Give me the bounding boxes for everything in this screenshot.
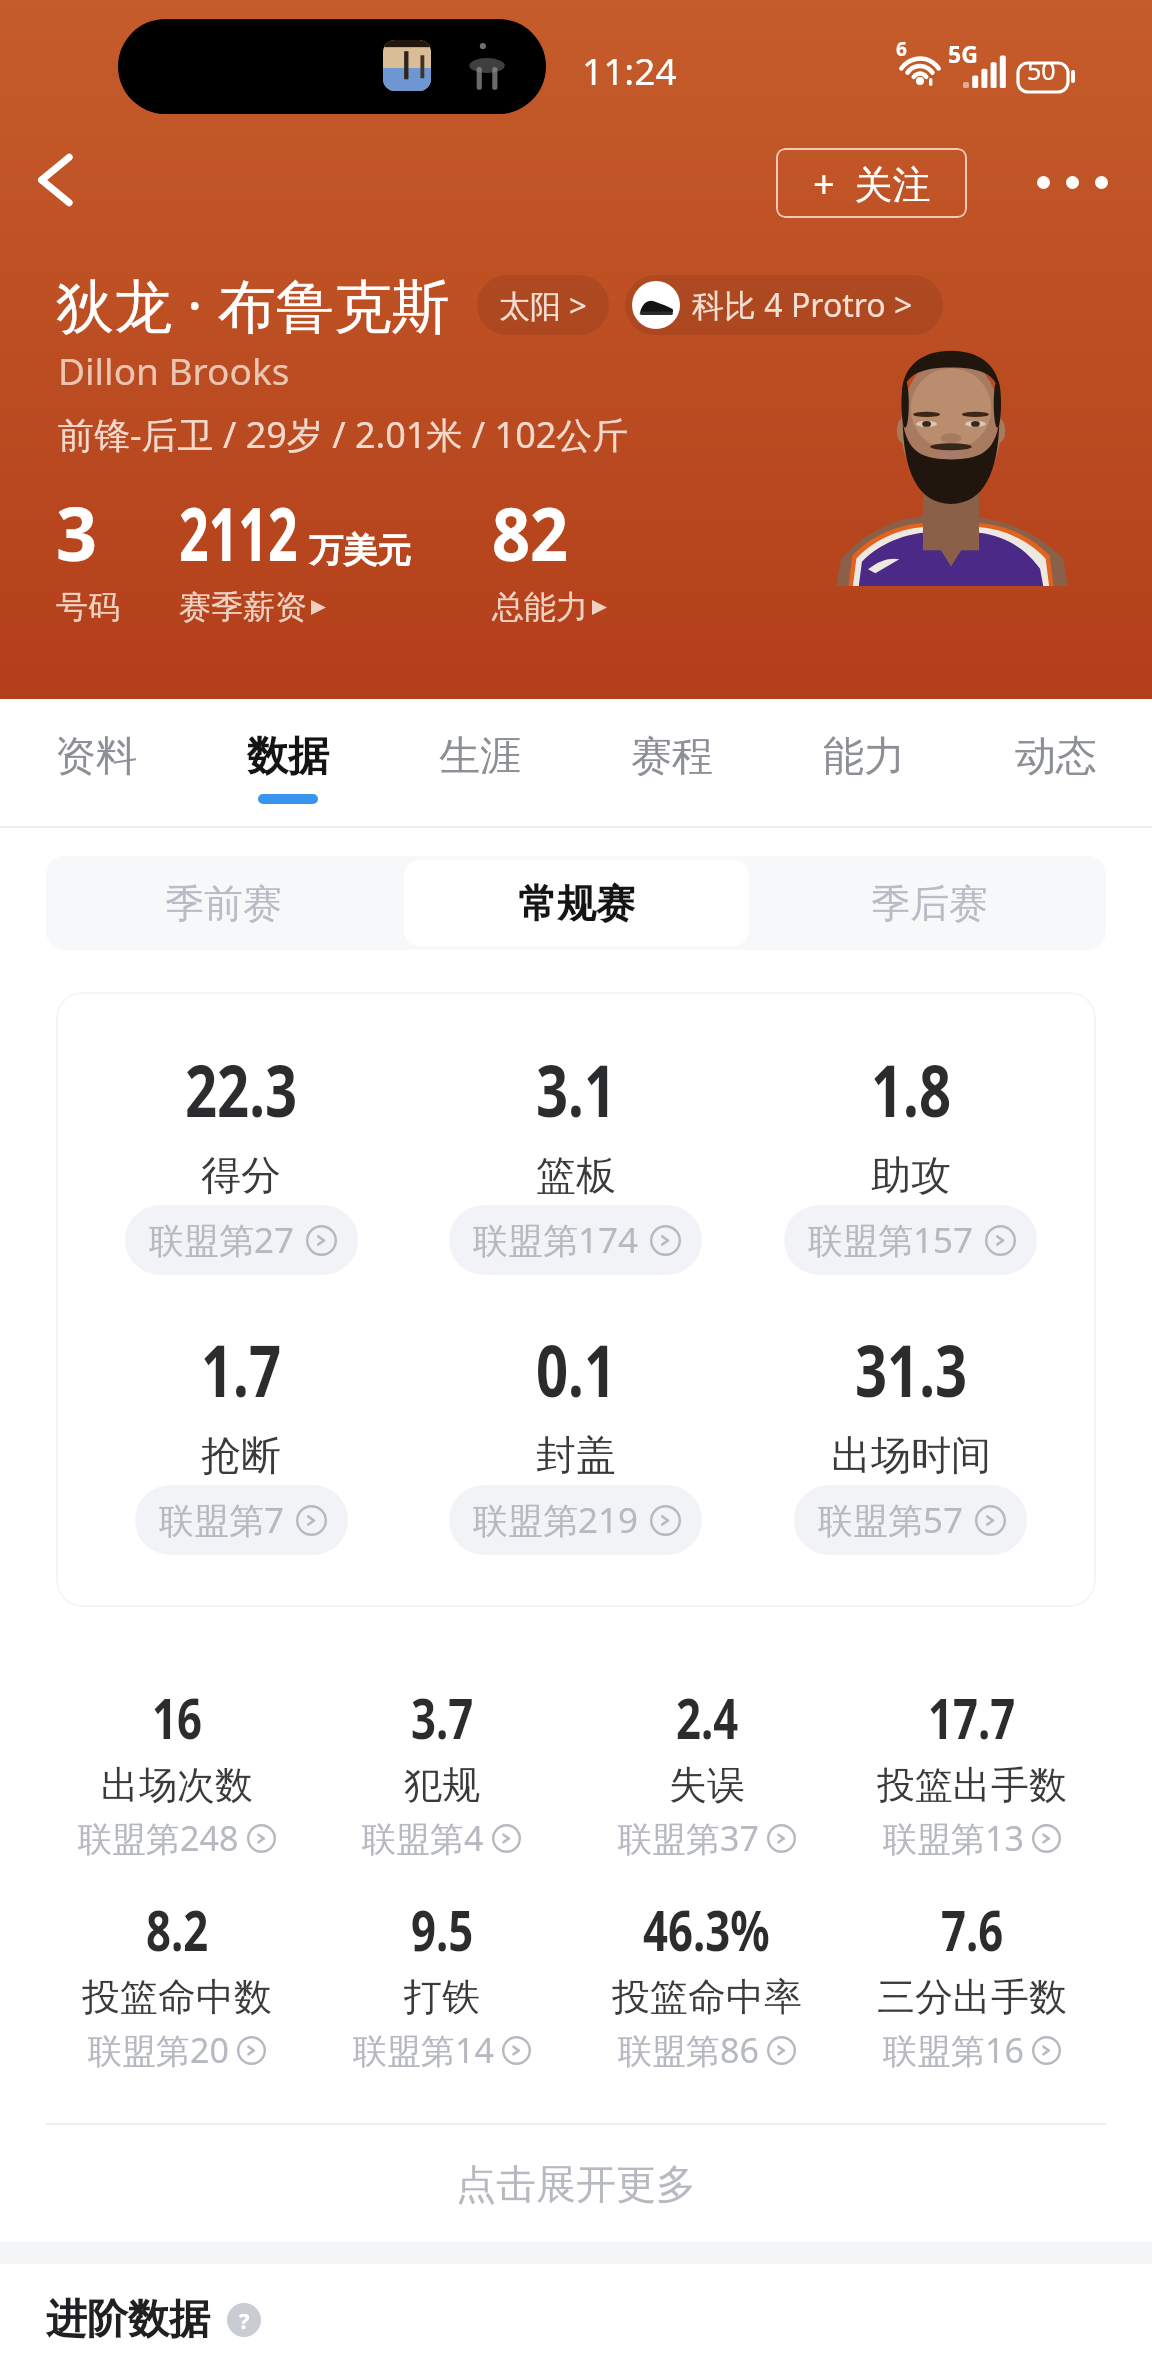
- staticText: 失误: [669, 1761, 745, 1809]
- button[interactable]: 联盟第86: [618, 2027, 796, 2073]
- staticText: 点击展开更多: [456, 2159, 696, 2209]
- staticText: 投篮命中数: [82, 1973, 272, 2021]
- staticText: 狄龙 · 布鲁克斯: [56, 265, 450, 344]
- staticText: 封盖: [536, 1430, 616, 1480]
- staticText: 出场次数: [101, 1761, 253, 1809]
- button[interactable]: More options: [1014, 124, 1130, 240]
- button[interactable]: 联盟第219: [449, 1485, 702, 1555]
- staticText: 46.3%: [643, 1891, 770, 1967]
- staticText: 1.7: [201, 1320, 281, 1418]
- button[interactable]: 季后赛: [757, 860, 1102, 946]
- staticText: 联盟第37: [618, 1815, 759, 1861]
- staticText: 联盟第27: [149, 1216, 295, 1264]
- staticText: 8.2: [146, 1891, 208, 1967]
- staticText: 能力: [823, 731, 905, 783]
- staticText: 投篮出手数: [877, 1761, 1067, 1809]
- staticText: 进阶数据: [46, 2294, 210, 2346]
- staticText: 助攻: [871, 1150, 951, 1200]
- staticText: 50: [1027, 53, 1056, 87]
- button[interactable]: 联盟第57: [794, 1485, 1027, 1555]
- staticText: 投篮命中率: [612, 1973, 802, 2021]
- staticText: 篮板: [536, 1150, 616, 1200]
- button[interactable]: 联盟第4: [362, 1815, 521, 1861]
- staticText: 6: [896, 36, 907, 62]
- staticText: 17.7: [928, 1679, 1015, 1755]
- button[interactable]: 联盟第174: [449, 1205, 702, 1275]
- staticText: 联盟第219: [473, 1496, 639, 1544]
- button[interactable]: 联盟第14: [353, 2027, 531, 2073]
- staticText: 季前赛: [165, 879, 282, 928]
- button[interactable]: Help: [227, 2303, 261, 2337]
- staticText: 号码: [56, 587, 120, 627]
- staticText: ?: [239, 2305, 250, 2335]
- button[interactable]: 科比 4 Protro >: [625, 275, 943, 335]
- button[interactable]: 联盟第157: [784, 1205, 1037, 1275]
- button[interactable]: 季前赛: [50, 860, 396, 946]
- button[interactable]: 联盟第16: [883, 2027, 1061, 2073]
- staticText: 万美元: [309, 529, 411, 572]
- staticText: 3.1: [536, 1040, 616, 1138]
- staticText: 3: [56, 482, 98, 583]
- button[interactable]: 常规赛: [404, 860, 749, 946]
- staticText: 7.6: [941, 1891, 1003, 1967]
- button[interactable]: 数据: [192, 699, 384, 826]
- staticText: 5G: [948, 38, 978, 69]
- staticText: 0.1: [536, 1320, 616, 1418]
- staticText: 生涯: [439, 731, 521, 783]
- staticText: 联盟第16: [883, 2027, 1024, 2073]
- staticText: 数据: [247, 731, 329, 783]
- staticText: 联盟第20: [88, 2027, 229, 2073]
- staticText: 联盟第86: [618, 2027, 759, 2073]
- staticText: 1.8: [871, 1040, 951, 1138]
- staticText: 常规赛: [518, 879, 635, 928]
- staticText: 联盟第174: [473, 1216, 639, 1264]
- staticText: 联盟第57: [818, 1496, 964, 1544]
- button[interactable]: 联盟第7: [135, 1485, 348, 1555]
- button[interactable]: 动态: [960, 699, 1152, 826]
- staticText: 犯规: [404, 1761, 480, 1809]
- button[interactable]: 资料: [0, 699, 192, 826]
- staticText: 总能力: [492, 587, 588, 627]
- staticText: 前锋-后卫 / 29岁 / 2.01米 / 102公斤: [58, 410, 629, 459]
- staticText: 太阳 >: [499, 284, 587, 326]
- staticText: 3.7: [411, 1679, 473, 1755]
- staticText: 联盟第14: [353, 2027, 494, 2073]
- staticText: 打铁: [404, 1973, 480, 2021]
- staticText: 赛程: [631, 731, 713, 783]
- staticText: 11:24: [582, 45, 677, 95]
- staticText: 联盟第248: [78, 1815, 239, 1861]
- button[interactable]: 太阳 >: [477, 275, 609, 335]
- staticText: 22.3: [185, 1040, 297, 1138]
- staticText: + 关注: [813, 157, 931, 209]
- staticText: 2112: [179, 482, 298, 583]
- button[interactable]: + 关注: [776, 148, 967, 218]
- button[interactable]: 联盟第27: [125, 1205, 358, 1275]
- button[interactable]: 点击展开更多: [0, 2125, 1152, 2242]
- staticText: 出场时间: [831, 1430, 991, 1480]
- staticText: 联盟第4: [362, 1815, 484, 1861]
- staticText: 9.5: [411, 1891, 473, 1967]
- button[interactable]: 联盟第20: [88, 2027, 266, 2073]
- staticText: 三分出手数: [877, 1973, 1067, 2021]
- staticText: 82: [492, 482, 568, 583]
- staticText: 16: [152, 1679, 203, 1755]
- button[interactable]: 联盟第37: [618, 1815, 796, 1861]
- staticText: 31.3: [855, 1320, 967, 1418]
- staticText: 得分: [201, 1150, 281, 1200]
- staticText: 联盟第7: [159, 1496, 285, 1544]
- staticText: 联盟第157: [808, 1216, 974, 1264]
- staticText: 资料: [55, 731, 137, 783]
- staticText: 抢断: [201, 1430, 281, 1480]
- button[interactable]: 联盟第248: [78, 1815, 276, 1861]
- button[interactable]: 联盟第13: [883, 1815, 1061, 1861]
- staticText: 季后赛: [871, 879, 988, 928]
- button[interactable]: 能力: [768, 699, 960, 826]
- button[interactable]: Back: [1, 125, 111, 235]
- staticText: 科比 4 Protro >: [692, 283, 913, 327]
- staticText: 赛季薪资: [179, 587, 307, 627]
- button[interactable]: 生涯: [384, 699, 576, 826]
- staticText: Dillon Brooks: [58, 345, 290, 395]
- staticText: 2.4: [676, 1679, 738, 1755]
- button[interactable]: 赛程: [576, 699, 768, 826]
- staticText: 联盟第13: [883, 1815, 1024, 1861]
